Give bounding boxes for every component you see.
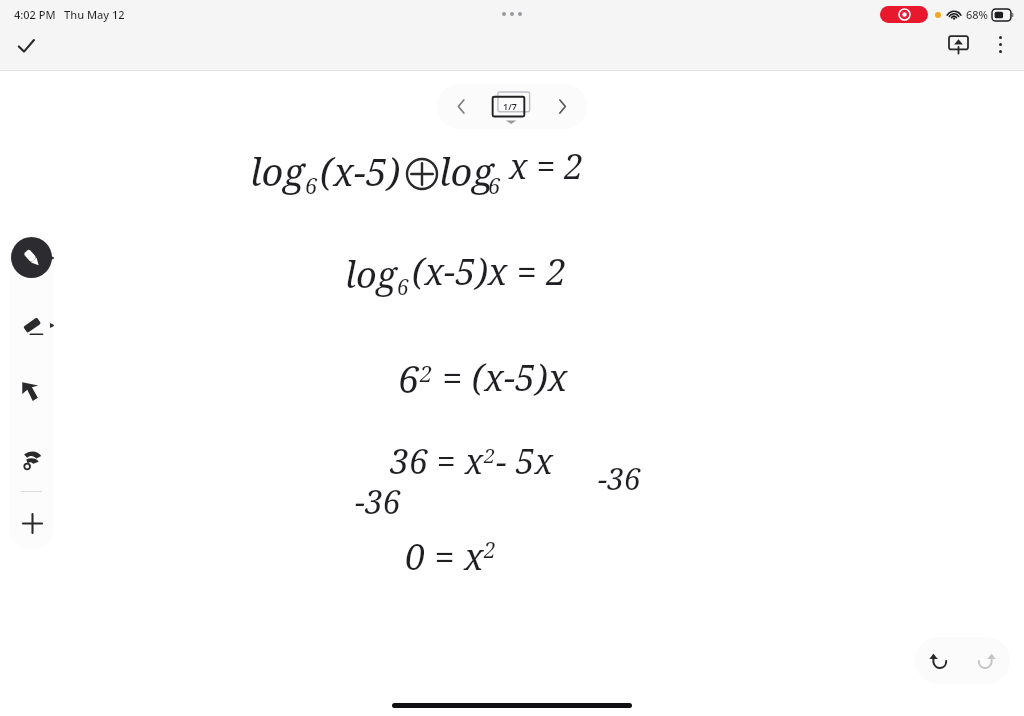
staticText: 0 = x bbox=[405, 532, 484, 581]
button[interactable]: Done bbox=[6, 26, 46, 66]
staticText: 1/7 bbox=[503, 100, 517, 112]
staticText: = (x-5)x bbox=[433, 353, 568, 402]
button[interactable]: Lasso tool bbox=[9, 436, 54, 481]
button[interactable]: Redo bbox=[962, 637, 1010, 684]
staticText: log bbox=[439, 145, 494, 197]
staticText: (x-5) bbox=[320, 145, 401, 197]
staticText: 2 bbox=[484, 536, 496, 565]
staticText: x = 2 bbox=[509, 143, 584, 189]
staticText: -36 bbox=[355, 480, 401, 524]
button[interactable]: Eraser tool bbox=[9, 302, 54, 347]
staticText: -36 bbox=[598, 458, 641, 499]
staticText: log bbox=[250, 145, 305, 197]
button[interactable]: Add tool bbox=[10, 501, 54, 545]
staticText: - 5x bbox=[496, 438, 553, 484]
staticText: 6 bbox=[398, 352, 420, 404]
staticText: 6 bbox=[488, 170, 501, 200]
button[interactable]: Previous page bbox=[437, 84, 587, 129]
staticText: 36 = x bbox=[390, 438, 484, 484]
staticText: (x-5)x = 2 bbox=[412, 247, 567, 296]
button[interactable]: Next page bbox=[538, 84, 587, 129]
staticText: 6 bbox=[305, 170, 318, 200]
staticText: 4:02 PM Thu May 12 bbox=[14, 7, 125, 22]
staticText: 2 bbox=[420, 358, 433, 388]
button[interactable]: Present bbox=[936, 22, 980, 66]
button[interactable]: Page 1 of 7 bbox=[486, 84, 538, 129]
button[interactable]: More options bbox=[980, 24, 1020, 64]
staticText: 2 bbox=[484, 442, 496, 469]
staticText: 6 bbox=[397, 273, 409, 302]
staticText: 68% bbox=[966, 7, 988, 22]
staticText: log bbox=[345, 250, 397, 299]
button[interactable]: Undo bbox=[915, 637, 962, 684]
button[interactable]: Select tool bbox=[9, 369, 54, 414]
button[interactable]: Previous page bbox=[437, 84, 486, 129]
button[interactable]: Pen tool bbox=[9, 235, 54, 280]
